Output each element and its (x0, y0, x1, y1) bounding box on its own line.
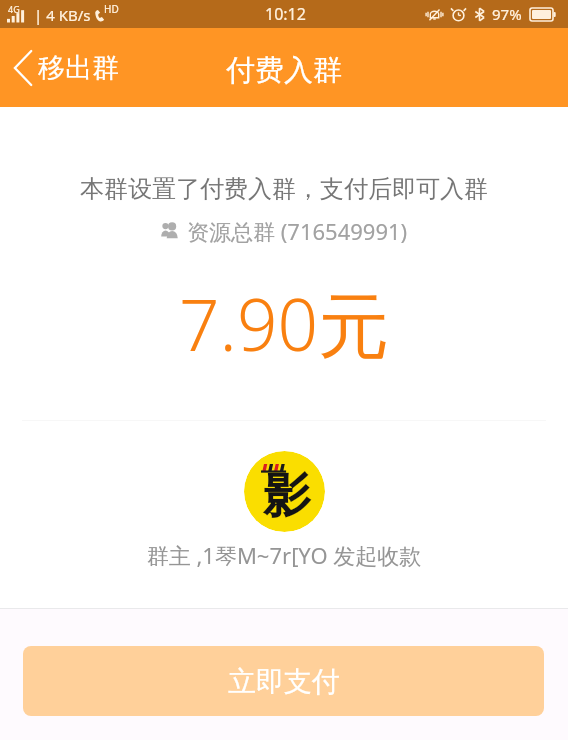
staticText: 7.90元 (0, 275, 568, 372)
staticText: | 4 KB/s (34, 5, 91, 25)
button[interactable]: 资源总群 (716549991) (161, 216, 408, 246)
staticText: 移出群 (38, 51, 119, 85)
staticText: 资源总群 (716549991) (187, 216, 408, 246)
staticText: 本群设置了付费入群，支付后即可入群 (0, 174, 568, 204)
staticText: HD (104, 2, 119, 16)
button[interactable]: Group owner avatar (244, 451, 325, 532)
staticText: 4G (8, 3, 20, 15)
staticText: 97% (492, 4, 522, 24)
button[interactable]: Back to 移出群 (0, 28, 129, 107)
staticText: 立即支付 (228, 664, 340, 699)
staticText: 付费入群 (226, 52, 342, 89)
staticText: 10:12 (265, 3, 306, 25)
staticText: 影 (263, 466, 311, 526)
button[interactable]: 立即支付 (23, 646, 544, 716)
staticText: 群主 ,1琴M~7r[YO 发起收款 (0, 540, 568, 570)
